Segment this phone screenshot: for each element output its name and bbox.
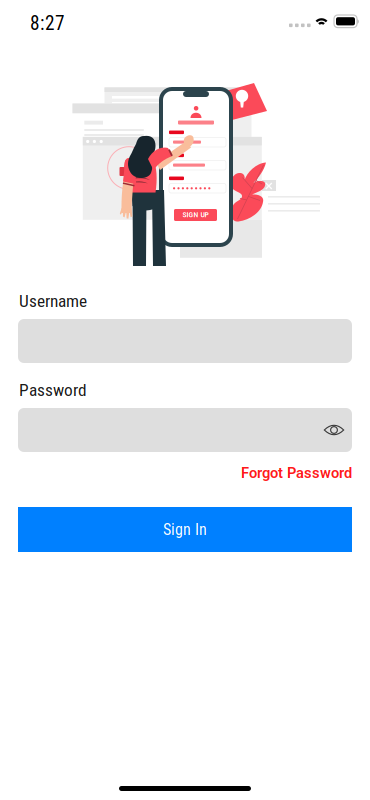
staticText: Sign In [163,520,207,539]
button[interactable]: Forgot Password [152,461,352,485]
staticText: Password [19,380,87,400]
staticText: SIGN UP [182,211,208,219]
staticText: Forgot Password [241,464,352,482]
staticText: Username [19,291,87,311]
button[interactable]: Sign In [18,507,352,552]
button[interactable]: Show password [314,410,354,450]
staticText: 8:27 [30,12,65,35]
